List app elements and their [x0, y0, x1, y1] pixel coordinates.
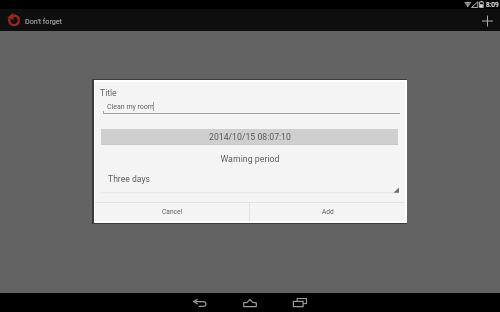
button[interactable]: Back	[180, 293, 220, 312]
button[interactable]: Cancel	[95, 203, 249, 221]
staticText: Add	[322, 208, 334, 216]
staticText: 8:09	[486, 1, 499, 9]
staticText: Warning period	[95, 154, 405, 164]
button[interactable]: Warning period selector	[101, 171, 398, 194]
staticText: Cancel	[162, 208, 183, 216]
button[interactable]: Home	[230, 293, 270, 312]
staticText: Don't forget	[25, 17, 62, 25]
button[interactable]: Add	[250, 203, 405, 221]
button[interactable]: 2014/10/15 08:07:10	[101, 129, 398, 144]
staticText: Three days	[108, 174, 150, 184]
staticText: 2014/10/15 08:07:10	[209, 132, 291, 142]
staticText: Clean my room	[107, 103, 154, 111]
staticText: Title	[100, 88, 117, 98]
button[interactable]: Recent apps	[280, 293, 320, 312]
button[interactable]: App icon	[5, 9, 23, 31]
button[interactable]: Add	[476, 10, 498, 32]
